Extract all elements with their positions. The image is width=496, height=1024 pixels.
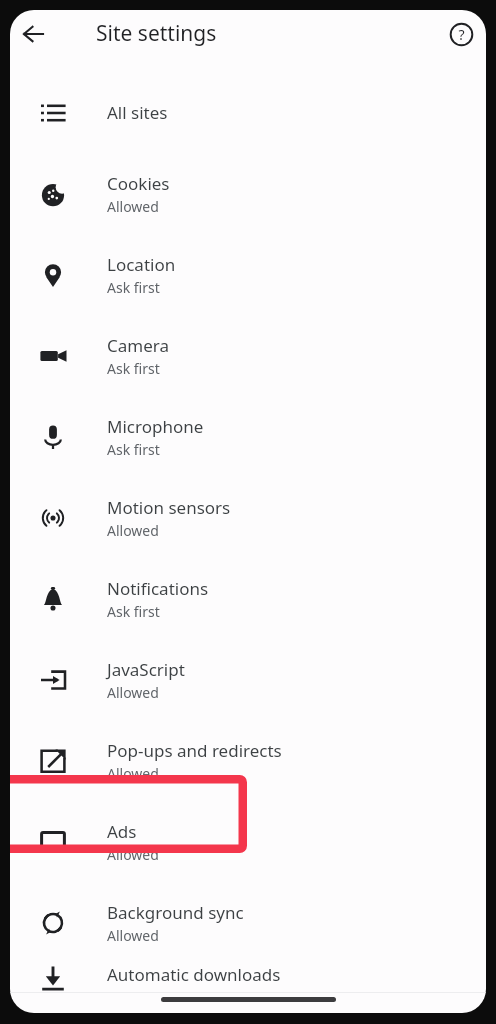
- staticText: Ask first: [107, 602, 160, 621]
- staticText: Pop-ups and redirects: [107, 739, 282, 762]
- staticText: Microphone: [107, 415, 204, 438]
- staticText: Allowed: [107, 926, 159, 945]
- button[interactable]: Navigate up: [10, 10, 58, 58]
- button[interactable]: Cookies: [10, 153, 486, 234]
- staticText: ?: [458, 25, 465, 44]
- button[interactable]: Camera: [10, 315, 486, 396]
- staticText: JavaScript: [107, 658, 185, 681]
- staticText: Motion sensors: [107, 496, 231, 519]
- staticText: Allowed: [107, 197, 159, 216]
- staticText: Automatic downloads: [107, 963, 281, 986]
- staticText: Camera: [107, 334, 169, 357]
- button[interactable]: Microphone: [10, 396, 486, 477]
- button[interactable]: Help: [439, 12, 483, 56]
- staticText: Ask first: [107, 359, 160, 378]
- button[interactable]: Location: [10, 234, 486, 315]
- staticText: Allowed: [107, 683, 159, 702]
- button[interactable]: JavaScript: [10, 639, 486, 720]
- staticText: Allowed: [107, 764, 159, 783]
- staticText: All sites: [107, 101, 168, 124]
- button[interactable]: Ads: [10, 801, 486, 882]
- staticText: Allowed: [107, 845, 159, 864]
- button[interactable]: Automatic downloads: [10, 963, 486, 992]
- staticText: Cookies: [107, 172, 170, 195]
- button[interactable]: Notifications: [10, 558, 486, 639]
- staticText: Ask first: [107, 440, 160, 459]
- staticText: Notifications: [107, 577, 209, 600]
- staticText: Location: [107, 253, 176, 276]
- staticText: Site settings: [96, 19, 217, 48]
- staticText: Ask first: [107, 278, 160, 297]
- button[interactable]: Pop-ups and redirects: [10, 720, 486, 801]
- button[interactable]: All sites: [10, 72, 486, 153]
- button[interactable]: Motion sensors: [10, 477, 486, 558]
- button[interactable]: Background sync: [10, 882, 486, 963]
- staticText: Background sync: [107, 901, 244, 924]
- staticText: Ads: [107, 820, 137, 843]
- staticText: Allowed: [107, 521, 159, 540]
